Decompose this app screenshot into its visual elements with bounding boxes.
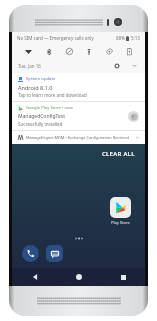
button[interactable]: Bluetooth [39, 44, 59, 59]
staticText: No SIM card — Emergency calls only [17, 35, 94, 41]
staticText: Android 8.1.0 [18, 84, 53, 91]
staticText: 68% [116, 35, 125, 41]
button[interactable]: Recent apps [101, 268, 145, 286]
button[interactable]: Play Store [108, 195, 133, 227]
button[interactable]: System update [12, 73, 145, 101]
button[interactable]: CLEAR ALL [99, 148, 138, 160]
staticText: ManageEngine MDM • Exchange Configuratio… [26, 135, 129, 140]
staticText: ManagedConfigTest [18, 113, 66, 120]
staticText: System update [26, 76, 56, 82]
button[interactable]: Back [12, 268, 57, 286]
button[interactable]: Flashlight [79, 44, 99, 59]
button[interactable]: Home [57, 268, 101, 286]
staticText: CLEAR ALL [102, 150, 135, 158]
button[interactable]: Phone [22, 245, 39, 262]
button[interactable]: Battery saver [119, 44, 139, 59]
staticText: Play Store [111, 220, 130, 225]
button[interactable]: Expand [130, 61, 139, 70]
button[interactable]: Do not disturb [59, 44, 79, 59]
staticText: Successfully installed [18, 121, 63, 127]
button[interactable]: Settings [112, 61, 121, 70]
staticText: Google Play Store • now [26, 105, 73, 111]
staticText: Tue, Jan 16 [18, 63, 41, 69]
button[interactable]: Messages [46, 245, 63, 262]
button[interactable]: Auto-rotate [99, 44, 119, 59]
button[interactable]: Wi-Fi [18, 44, 39, 59]
staticText: 5:13 [131, 35, 140, 41]
staticText: Tap to learn more and download [18, 92, 87, 98]
button[interactable]: Google Play Store • now [12, 102, 145, 130]
button[interactable]: ManageEngine MDM • Exchange Configuratio… [12, 131, 145, 144]
